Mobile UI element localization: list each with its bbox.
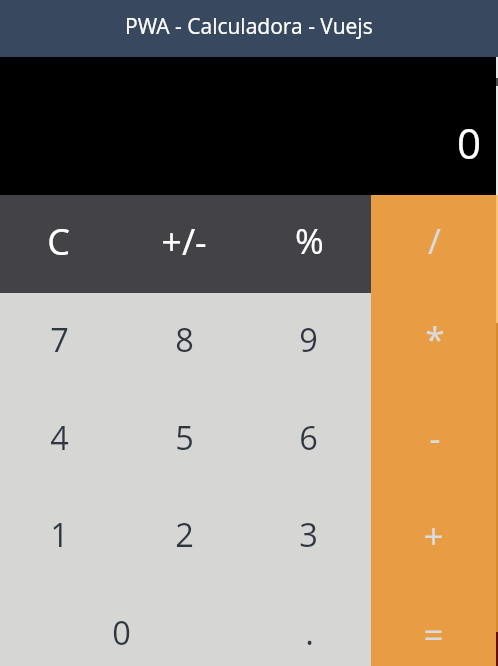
button[interactable]: 1: [0, 488, 124, 586]
button[interactable]: -: [371, 390, 498, 488]
staticText: +/-: [161, 217, 207, 266]
button[interactable]: 0: [0, 586, 247, 666]
button[interactable]: 4: [0, 391, 124, 489]
staticText: 2: [175, 512, 194, 556]
staticText: 8: [175, 317, 194, 361]
button[interactable]: +/-: [124, 195, 248, 293]
button[interactable]: .: [247, 586, 371, 666]
staticText: 6: [299, 415, 318, 459]
button[interactable]: 9: [247, 293, 371, 391]
staticText: 9: [299, 317, 318, 361]
button[interactable]: 6: [247, 391, 371, 489]
button[interactable]: /: [371, 195, 498, 293]
button[interactable]: 3: [247, 488, 371, 586]
button[interactable]: +: [371, 488, 498, 586]
staticText: 5: [175, 415, 194, 459]
button[interactable]: 2: [124, 488, 248, 586]
staticText: =: [423, 611, 444, 659]
button[interactable]: 5: [124, 391, 248, 489]
staticText: /: [428, 217, 441, 265]
button[interactable]: *: [371, 293, 498, 391]
button[interactable]: 7: [0, 293, 124, 391]
button[interactable]: =: [371, 586, 498, 666]
staticText: 3: [299, 512, 318, 556]
staticText: *: [425, 315, 445, 363]
button[interactable]: C: [0, 195, 124, 293]
staticText: 4: [50, 415, 69, 459]
staticText: 0: [457, 114, 482, 171]
staticText: C: [47, 217, 70, 266]
staticText: PWA - Calculadora - Vuejs: [125, 12, 373, 41]
button[interactable]: %: [247, 195, 371, 293]
staticText: %: [295, 217, 324, 265]
staticText: 0: [112, 610, 131, 654]
staticText: .: [305, 610, 314, 654]
staticText: -: [429, 414, 441, 462]
button[interactable]: PWA - Calculadora - Vuejs: [0, 0, 498, 57]
staticText: 7: [50, 317, 69, 361]
staticText: 1: [50, 512, 69, 556]
staticText: +: [423, 512, 444, 560]
button[interactable]: 8: [124, 293, 248, 391]
